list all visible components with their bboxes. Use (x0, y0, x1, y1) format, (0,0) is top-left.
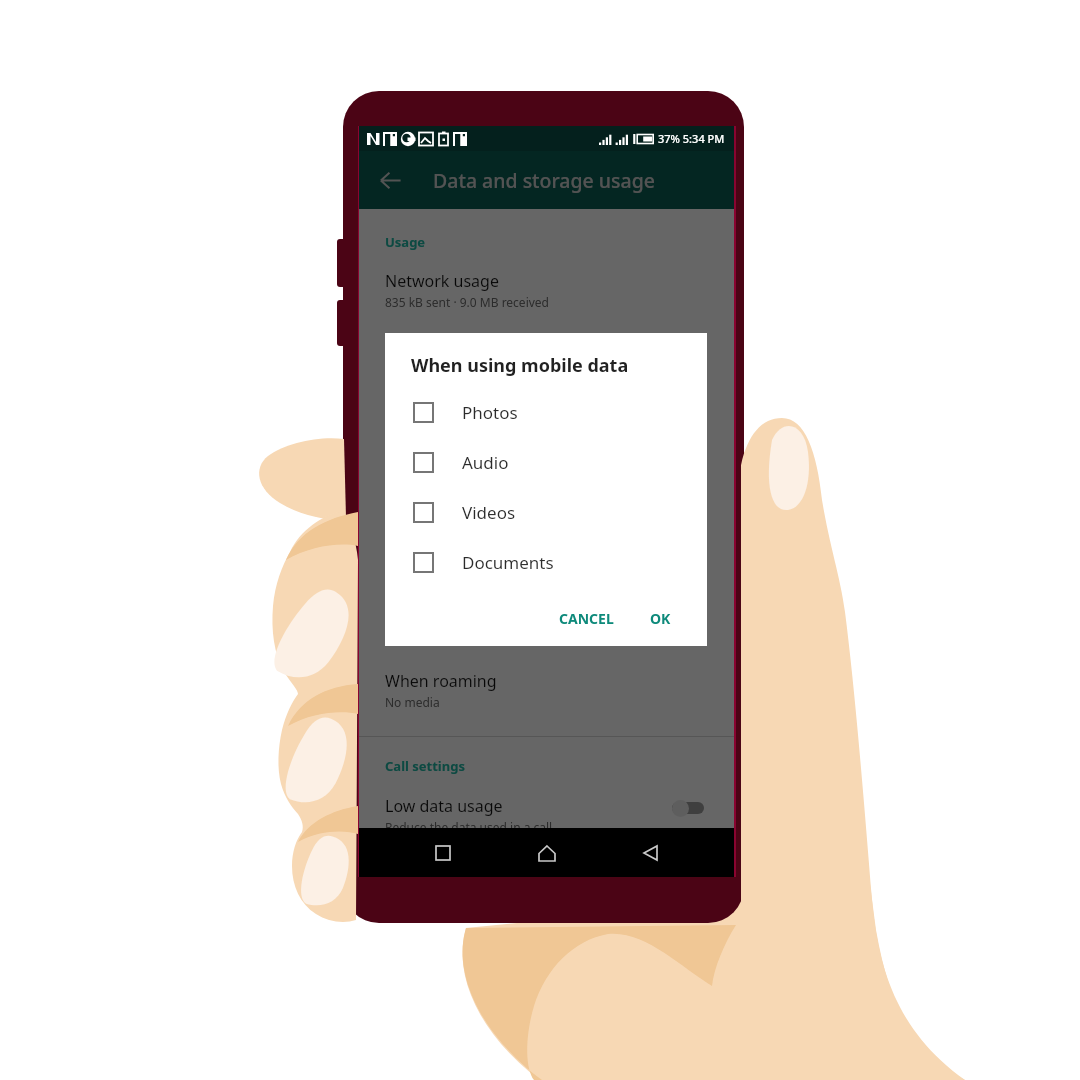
button[interactable]: Network usage (359, 268, 734, 318)
staticText: Network usage (385, 270, 499, 292)
button[interactable]: Go back (628, 831, 672, 875)
button[interactable]: Media auto-download (359, 328, 734, 360)
button[interactable]: OK (640, 605, 681, 632)
button[interactable]: Low data usage (359, 793, 672, 843)
staticText: Usage (385, 233, 426, 251)
staticText: Reduce the data used in a call (385, 819, 553, 835)
staticText: Photos (462, 401, 518, 424)
staticText: Low data usage (385, 795, 503, 817)
staticText: Videos (462, 501, 516, 524)
button[interactable]: Documents (385, 537, 707, 587)
staticText: 835 kB sent · 9.0 MB received (385, 294, 549, 310)
button[interactable]: When roaming (359, 668, 734, 718)
staticText: When roaming (385, 670, 497, 692)
button[interactable]: Videos (385, 487, 707, 537)
staticText: OK (650, 609, 671, 628)
staticText: No media (385, 694, 440, 710)
button[interactable]: Photos (385, 387, 707, 437)
button[interactable]: Audio (385, 437, 707, 487)
button[interactable]: Home (525, 831, 569, 875)
button[interactable]: Low data usage toggle (672, 799, 708, 817)
staticText: Media auto-download (385, 330, 550, 352)
staticText: CANCEL (559, 609, 614, 628)
button[interactable]: Back (369, 159, 411, 201)
staticText: Call settings (385, 757, 465, 775)
button[interactable]: CANCEL (549, 605, 624, 632)
staticText: When using mobile data (411, 353, 629, 378)
staticText: 37% 5:34 PM (658, 131, 725, 146)
staticText: Audio (462, 451, 509, 474)
button[interactable]: Recents (421, 831, 465, 875)
staticText: Documents (462, 551, 554, 574)
staticText: Data and storage usage (433, 167, 656, 194)
